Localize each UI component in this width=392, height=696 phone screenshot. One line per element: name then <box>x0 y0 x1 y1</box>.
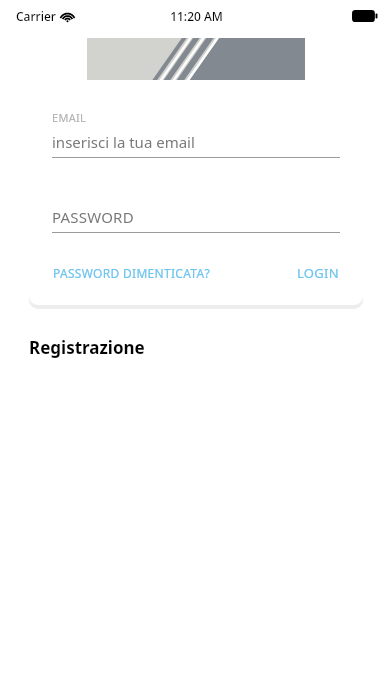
staticText: inserisci la tua email <box>52 132 195 152</box>
staticText: EMAIL <box>52 110 87 125</box>
staticText: 11:20 AM <box>170 8 223 24</box>
staticText: PASSWORD <box>52 207 134 227</box>
button[interactable]: LOGIN <box>296 260 340 286</box>
button[interactable]: Registrazione <box>20 332 154 363</box>
other: Company logo <box>87 38 305 80</box>
staticText: Registrazione <box>29 336 145 359</box>
button[interactable]: PASSWORD DIMENTICATA? <box>52 261 211 285</box>
button[interactable]: PASSWORD <box>52 207 340 233</box>
other: Battery full <box>352 10 378 22</box>
staticText: PASSWORD DIMENTICATA? <box>53 265 210 281</box>
staticText: LOGIN <box>297 264 339 282</box>
button[interactable]: inserisci la tua email <box>52 132 340 158</box>
other: Wi-Fi signal <box>61 11 74 22</box>
staticText: Carrier <box>16 8 56 24</box>
